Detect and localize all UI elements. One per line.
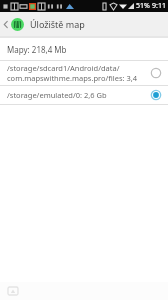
- staticText: Úložiště map: [30, 18, 85, 30]
- staticText: /storage/emulated/0: 2,6 Gb: [7, 90, 107, 100]
- staticText: /storage/sdcard1/Android/data/: [7, 63, 120, 73]
- button[interactable]: Hide keyboard: [7, 285, 19, 297]
- button[interactable]: /storage/sdcard1/Android/data/: [0, 61, 168, 85]
- button[interactable]: /storage/emulated/0: 2,6 Gb: [0, 86, 168, 104]
- other: Selected: [150, 89, 162, 101]
- staticText: 51%: [136, 1, 150, 11]
- staticText: com.mapswithme.maps.pro/files: 3,4: [7, 73, 138, 83]
- staticText: 9:11: [152, 1, 166, 11]
- button[interactable]: Back: [0, 12, 26, 36]
- other: Not selected: [150, 67, 162, 79]
- staticText: Mapy: 218,4 Mb: [7, 44, 67, 55]
